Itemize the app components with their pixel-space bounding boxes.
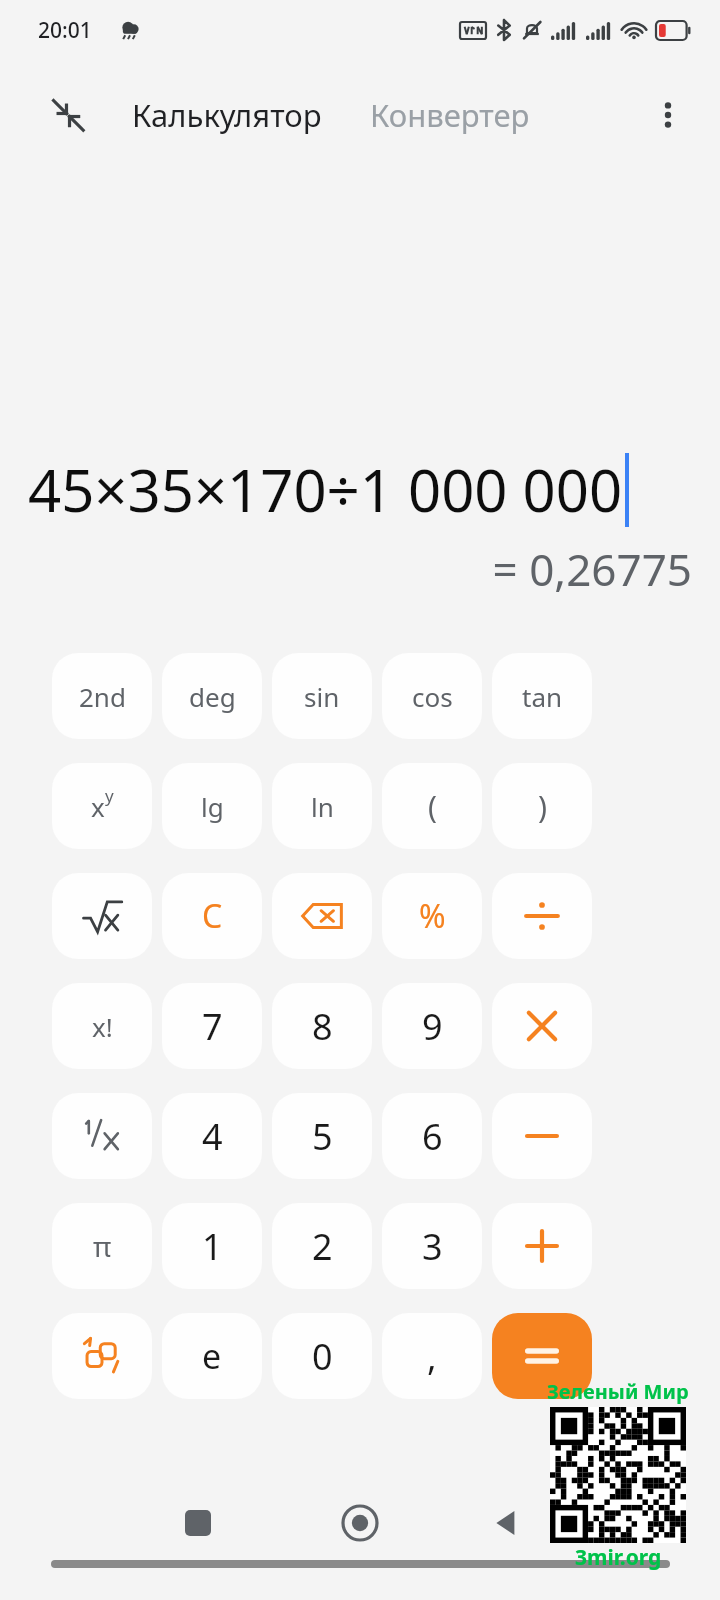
button[interactable]: Divide (492, 873, 592, 959)
button[interactable]: 8 (272, 983, 372, 1069)
button[interactable]: 2 (272, 1203, 372, 1289)
staticText: ) (538, 786, 547, 827)
staticText: 2nd (79, 679, 126, 714)
staticText: tan (522, 679, 563, 714)
staticText: Зеленый Мир (547, 1378, 689, 1405)
button[interactable]: Minus (492, 1093, 592, 1179)
button[interactable]: x (52, 763, 152, 849)
button[interactable]: More options (640, 87, 696, 143)
staticText: 20:01 (38, 16, 92, 45)
button[interactable]: x! (52, 983, 152, 1069)
button[interactable]: Plus (492, 1203, 592, 1289)
staticText: 4 (202, 1112, 223, 1161)
staticText: 3 (422, 1222, 443, 1271)
button[interactable]: 1 (162, 1203, 262, 1289)
button[interactable]: 9 (382, 983, 482, 1069)
button[interactable]: Back (478, 1495, 534, 1551)
button[interactable]: Random (52, 1313, 152, 1399)
staticText: x (91, 789, 105, 824)
staticText: 3mir.org (575, 1543, 662, 1572)
button[interactable]: 7 (162, 983, 262, 1069)
button[interactable]: ( (382, 763, 482, 849)
button[interactable]: e (162, 1313, 262, 1399)
staticText: C (202, 894, 223, 938)
staticText: , (427, 1332, 437, 1381)
staticText: ( (428, 786, 437, 827)
staticText: cos (412, 679, 453, 714)
button[interactable]: % (382, 873, 482, 959)
button[interactable]: tan (492, 653, 592, 739)
staticText: 9 (422, 1002, 443, 1051)
button[interactable]: ) (492, 763, 592, 849)
button[interactable]: One over x (52, 1093, 152, 1179)
staticText: y (105, 784, 114, 807)
staticText: ln (311, 789, 334, 824)
staticText: % (419, 894, 446, 938)
staticText: 1 (202, 1222, 223, 1271)
button[interactable]: deg (162, 653, 262, 739)
button[interactable]: cos (382, 653, 482, 739)
staticText: 7 (202, 1002, 223, 1051)
button[interactable]: ln (272, 763, 372, 849)
button[interactable]: Equals (492, 1313, 592, 1399)
button[interactable]: sin (272, 653, 372, 739)
button[interactable]: 3 (382, 1203, 482, 1289)
staticText: 45×35×170÷1 000 000 (28, 450, 623, 529)
button[interactable]: Square root (52, 873, 152, 959)
button[interactable]: 2nd (52, 653, 152, 739)
staticText: sin (304, 679, 340, 714)
button[interactable]: Конвертер (366, 86, 534, 144)
button[interactable]: Recents (170, 1495, 226, 1551)
staticText: 0 (312, 1332, 333, 1381)
staticText: 5 (312, 1112, 333, 1161)
button[interactable]: , (382, 1313, 482, 1399)
staticText: Конвертер (370, 94, 530, 136)
staticText: 6 (422, 1112, 443, 1161)
button[interactable]: 6 (382, 1093, 482, 1179)
staticText: deg (189, 679, 236, 714)
button[interactable]: Калькулятор (128, 86, 326, 144)
staticText: e (202, 1333, 222, 1379)
button[interactable]: Multiply (492, 983, 592, 1069)
staticText: π (93, 1227, 112, 1265)
button[interactable]: Collapse (40, 87, 96, 143)
staticText: x! (92, 1009, 113, 1044)
button[interactable]: C (162, 873, 262, 959)
button[interactable]: 0 (272, 1313, 372, 1399)
staticText: Калькулятор (132, 94, 322, 136)
button[interactable]: lg (162, 763, 262, 849)
button[interactable]: π (52, 1203, 152, 1289)
staticText: = 0,26775 (28, 539, 692, 599)
button[interactable]: 5 (272, 1093, 372, 1179)
button[interactable]: Home (330, 1493, 390, 1553)
button[interactable]: 4 (162, 1093, 262, 1179)
staticText: 2 (312, 1222, 333, 1271)
staticText: lg (201, 789, 224, 824)
button[interactable]: Backspace (272, 873, 372, 959)
staticText: 8 (312, 1002, 333, 1051)
